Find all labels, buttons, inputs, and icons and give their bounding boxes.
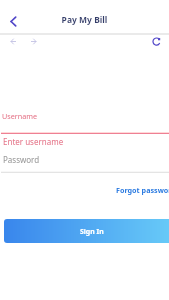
staticText: Pay My Bill [0, 14, 169, 26]
button[interactable]: Reload [149, 34, 163, 48]
staticText: Sign In [80, 227, 104, 236]
button[interactable]: Forward [26, 34, 40, 48]
button[interactable]: Back [2, 13, 24, 29]
button[interactable]: Sign In [4, 219, 169, 243]
button[interactable]: Forgot password [116, 185, 169, 195]
button[interactable]: Back [6, 34, 20, 48]
staticText: Username [2, 111, 37, 121]
staticText: Enter username [3, 136, 64, 147]
staticText: Password [3, 154, 40, 165]
